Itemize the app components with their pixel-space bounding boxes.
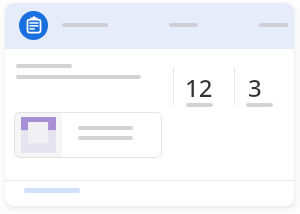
staticText: 12: [185, 71, 213, 104]
button[interactable]: [14, 112, 162, 158]
button[interactable]: Forms: [19, 11, 48, 40]
button[interactable]: Primary action: [24, 188, 80, 193]
staticText: 3: [248, 71, 262, 104]
